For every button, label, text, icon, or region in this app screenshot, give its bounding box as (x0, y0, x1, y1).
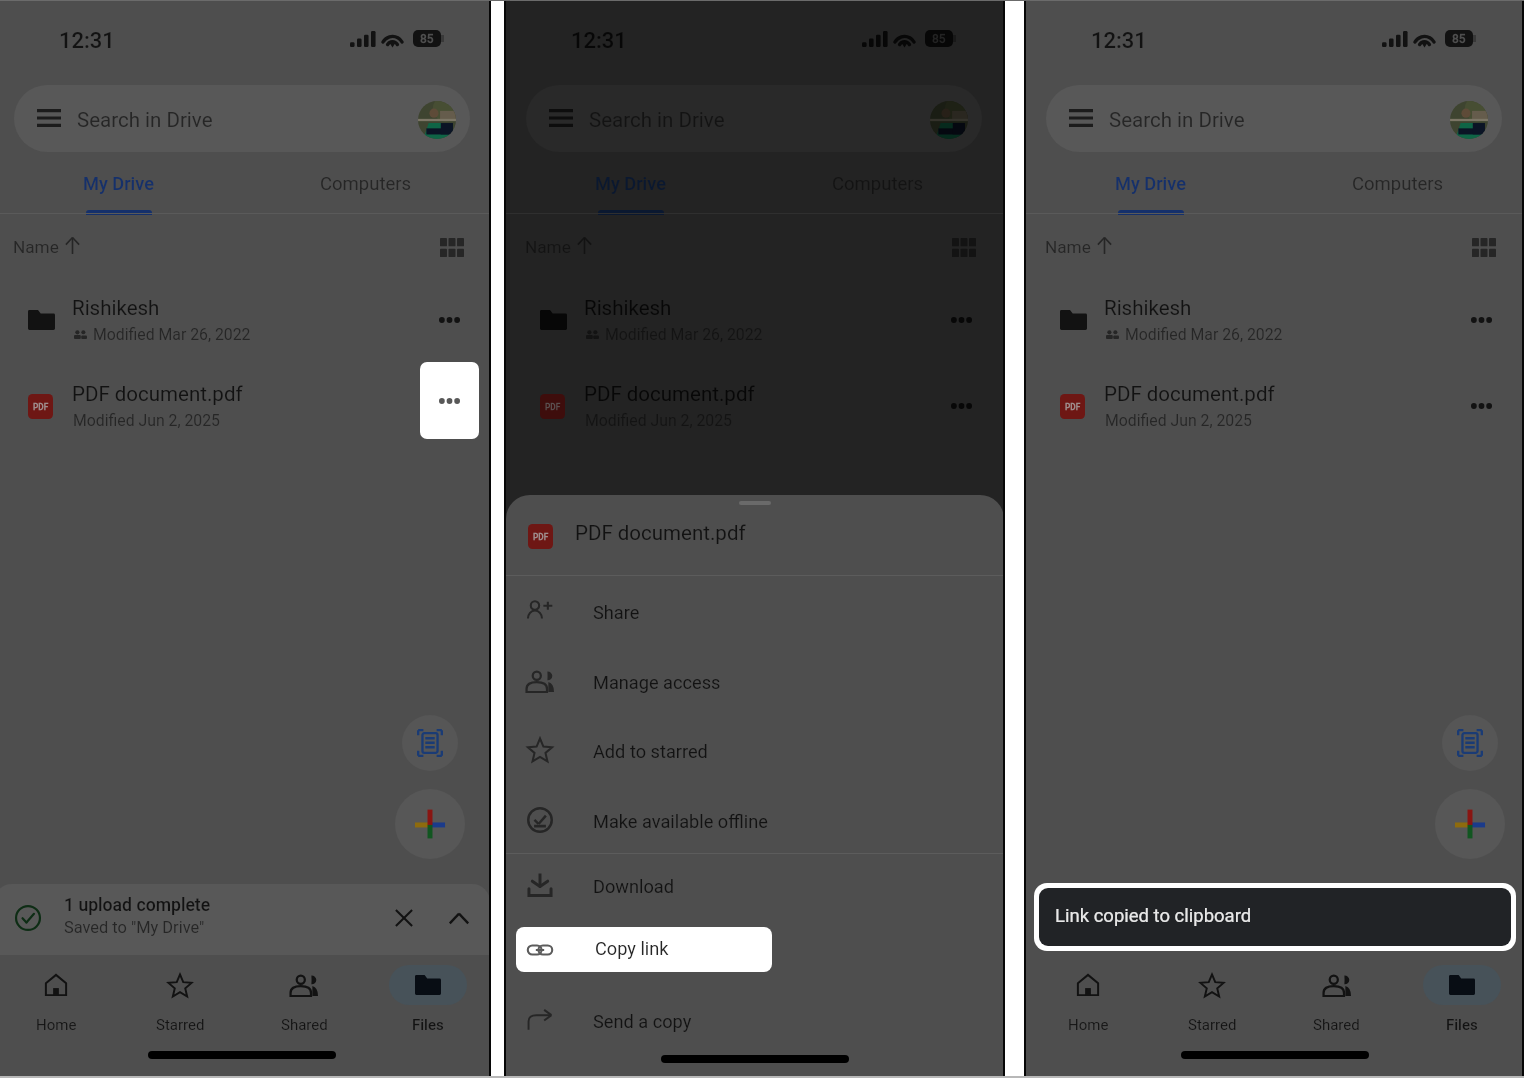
button[interactable]: Make available offline (506, 785, 1004, 855)
button[interactable]: PDF (0, 371, 490, 451)
button[interactable]: Expand (438, 897, 480, 939)
staticText: Files (412, 1016, 444, 1034)
staticText: Copy link (595, 938, 669, 959)
button[interactable]: Account (418, 101, 456, 139)
button[interactable]: More options (938, 383, 984, 429)
other: Navigation menu (1069, 109, 1093, 127)
button[interactable]: Name (512, 228, 608, 270)
button[interactable]: Shared (1274, 955, 1399, 1050)
button[interactable]: Name (1032, 228, 1128, 270)
staticText: PDF (533, 532, 549, 542)
staticText: Modified Jun 2, 2025 (585, 411, 732, 430)
button[interactable]: Download (506, 850, 1004, 920)
staticText: Make available offline (593, 811, 768, 832)
button[interactable]: Computers (1274, 160, 1522, 215)
staticText: PDF (33, 402, 49, 412)
button[interactable]: Send a copy (506, 985, 1004, 1055)
button[interactable]: PDF (1026, 371, 1524, 451)
staticText: Rishikesh (72, 296, 160, 320)
button[interactable]: Navigation menu (526, 85, 982, 152)
button[interactable]: Rishikesh (506, 285, 1004, 365)
staticText: Computers (832, 173, 924, 195)
staticText: 1 upload complete (64, 895, 211, 916)
button[interactable]: Name (0, 228, 96, 270)
staticText: Modified Mar 26, 2022 (1125, 325, 1283, 344)
staticText: PDF (545, 402, 561, 412)
button[interactable]: Link copied to clipboard (1039, 888, 1511, 946)
button[interactable]: Starred (118, 955, 242, 1050)
staticText: Add to starred (593, 741, 708, 762)
button[interactable]: Share (506, 576, 1004, 646)
button[interactable]: Add to starred (506, 715, 1004, 785)
staticText: Home (36, 1016, 77, 1034)
button[interactable]: More options (420, 362, 479, 439)
button[interactable]: Scan document (1442, 715, 1498, 771)
button[interactable]: Starred (1150, 955, 1274, 1050)
staticText: My Drive (595, 173, 666, 194)
staticText: Share (593, 602, 640, 623)
button[interactable]: Account (930, 101, 968, 139)
button[interactable]: More options (938, 297, 984, 343)
button[interactable]: Copy link (516, 927, 772, 972)
staticText: Computers (1352, 173, 1444, 195)
staticText: Send a copy (593, 1011, 692, 1032)
button[interactable]: PDF (506, 371, 1004, 451)
staticText: Shared (281, 1016, 328, 1034)
button[interactable]: Create new (1435, 789, 1505, 859)
staticText: PDF document.pdf (72, 382, 243, 406)
button[interactable]: My Drive (0, 160, 242, 215)
other: Navigation menu (549, 109, 573, 127)
staticText: Name (525, 237, 571, 257)
staticText: 85 (1452, 32, 1466, 46)
other: Navigation menu (37, 109, 61, 127)
staticText: 12:31 (59, 28, 115, 54)
staticText: Rishikesh (1104, 296, 1192, 320)
button[interactable]: Shared (242, 955, 366, 1050)
staticText: Modified Mar 26, 2022 (93, 325, 251, 344)
button[interactable]: More options (426, 297, 472, 343)
staticText: Modified Jun 2, 2025 (73, 411, 220, 430)
staticText: Search in Drive (1109, 108, 1245, 132)
staticText: Link copied to clipboard (1055, 905, 1252, 927)
staticText: Search in Drive (77, 108, 213, 132)
staticText: PDF document.pdf (575, 521, 746, 545)
staticText: Files (1446, 1016, 1478, 1034)
button[interactable]: Files (366, 955, 490, 1050)
staticText: Modified Jun 2, 2025 (1105, 411, 1252, 430)
staticText: My Drive (83, 173, 154, 194)
button[interactable]: Switch to grid view (430, 225, 474, 269)
button[interactable]: My Drive (1026, 160, 1274, 215)
button[interactable]: Switch to grid view (942, 225, 986, 269)
button[interactable]: Rishikesh (0, 285, 490, 365)
button[interactable]: Switch to grid view (1462, 225, 1506, 269)
staticText: Starred (1188, 1016, 1237, 1034)
staticText: Name (13, 237, 59, 257)
button[interactable]: Rishikesh (1026, 285, 1524, 365)
staticText: Shared (1313, 1016, 1360, 1034)
staticText: 12:31 (571, 28, 627, 54)
staticText: Download (593, 876, 674, 897)
button[interactable]: My Drive (506, 160, 754, 215)
staticText: 85 (420, 32, 434, 46)
staticText: Manage access (593, 672, 721, 693)
staticText: 12:31 (1091, 28, 1147, 54)
staticText: Name (1045, 237, 1091, 257)
button[interactable]: Create new (395, 789, 465, 859)
button[interactable]: Home (1026, 955, 1150, 1050)
staticText: PDF document.pdf (1104, 382, 1275, 406)
button[interactable]: More options (1458, 383, 1504, 429)
button[interactable]: More options (1458, 297, 1504, 343)
staticText: Rishikesh (584, 296, 672, 320)
button[interactable]: Navigation menu (1046, 85, 1502, 152)
staticText: PDF document.pdf (584, 382, 755, 406)
button[interactable]: Computers (242, 160, 490, 215)
button[interactable]: Manage access (506, 646, 1004, 716)
button[interactable]: Scan document (402, 715, 458, 771)
staticText: Search in Drive (589, 108, 725, 132)
button[interactable]: Dismiss (383, 897, 425, 939)
button[interactable]: Navigation menu (14, 85, 470, 152)
button[interactable]: Files (1399, 955, 1524, 1050)
button[interactable]: Account (1450, 101, 1488, 139)
button[interactable]: Home (0, 955, 118, 1050)
